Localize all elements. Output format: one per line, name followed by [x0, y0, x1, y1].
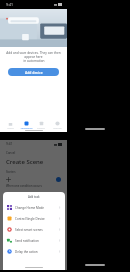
staticText: Automation	[20, 127, 33, 130]
button[interactable]: Select smart scenes	[3, 224, 65, 235]
button[interactable]: Cancel	[6, 151, 16, 155]
button[interactable]: Add device	[8, 68, 59, 76]
staticText: 9:41	[6, 142, 13, 146]
button[interactable]: Change Home Mode	[3, 202, 65, 213]
button[interactable]: Control Single Device	[3, 213, 65, 224]
staticText: Select smart scenes	[15, 228, 43, 232]
button[interactable]: Delay the action	[3, 246, 65, 257]
button[interactable]: Settings	[50, 121, 64, 130]
staticText: Send notification	[15, 239, 39, 243]
button[interactable]: Automation	[19, 121, 33, 130]
button[interactable]: Device	[6, 192, 61, 205]
staticText: in automation	[23, 59, 45, 63]
staticText: Delay the action	[15, 250, 38, 254]
staticText: When one condition occurs	[6, 184, 42, 188]
staticText: Add device	[25, 70, 43, 75]
staticText: 9:41	[6, 2, 13, 7]
button[interactable]: Send notification	[3, 235, 65, 246]
button[interactable]: Devices	[34, 121, 48, 130]
staticText: Control Single Device	[15, 217, 45, 221]
staticText: Settings	[53, 127, 62, 130]
staticText: Create Scene	[6, 158, 44, 166]
staticText: Home	[7, 127, 14, 130]
staticText: Change Home Mode	[15, 206, 44, 210]
staticText: Add and save devices. They can then appe…	[6, 51, 61, 59]
staticText: Add task	[28, 195, 40, 199]
button[interactable]	[6, 177, 61, 182]
staticText: Devices	[37, 127, 45, 130]
button[interactable]: Home	[3, 121, 17, 130]
staticText: Starters	[6, 170, 16, 174]
